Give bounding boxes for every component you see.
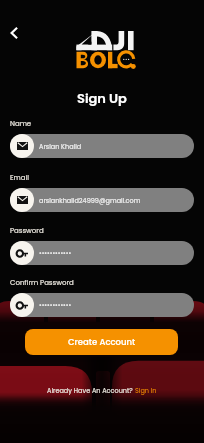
staticText: •••••••••••• — [39, 301, 72, 310]
staticText: Confirm Password — [10, 278, 74, 288]
button[interactable]: •••••••••••• — [10, 293, 194, 317]
staticText: Email — [10, 173, 29, 183]
staticText: Password — [10, 226, 44, 236]
staticText: Arslan Khalid — [39, 142, 82, 151]
button[interactable]: Sign In — [135, 386, 157, 395]
button[interactable]: Back — [2, 21, 26, 45]
staticText: Sign Up — [77, 89, 127, 107]
button[interactable]: •••••••••••• — [10, 241, 194, 265]
button[interactable]: Arslan Khalid — [10, 134, 194, 158]
staticText: Create Account — [68, 336, 136, 348]
staticText: arslankhalid24999@gmail.com — [39, 196, 141, 205]
button[interactable]: arslankhalid24999@gmail.com — [10, 188, 194, 212]
staticText: •••••••••••• — [39, 249, 72, 258]
staticText: Sign In — [135, 386, 157, 395]
staticText: Already Have An Account? — [47, 386, 135, 395]
staticText: Name — [10, 119, 32, 129]
button[interactable]: Create Account — [25, 329, 178, 355]
